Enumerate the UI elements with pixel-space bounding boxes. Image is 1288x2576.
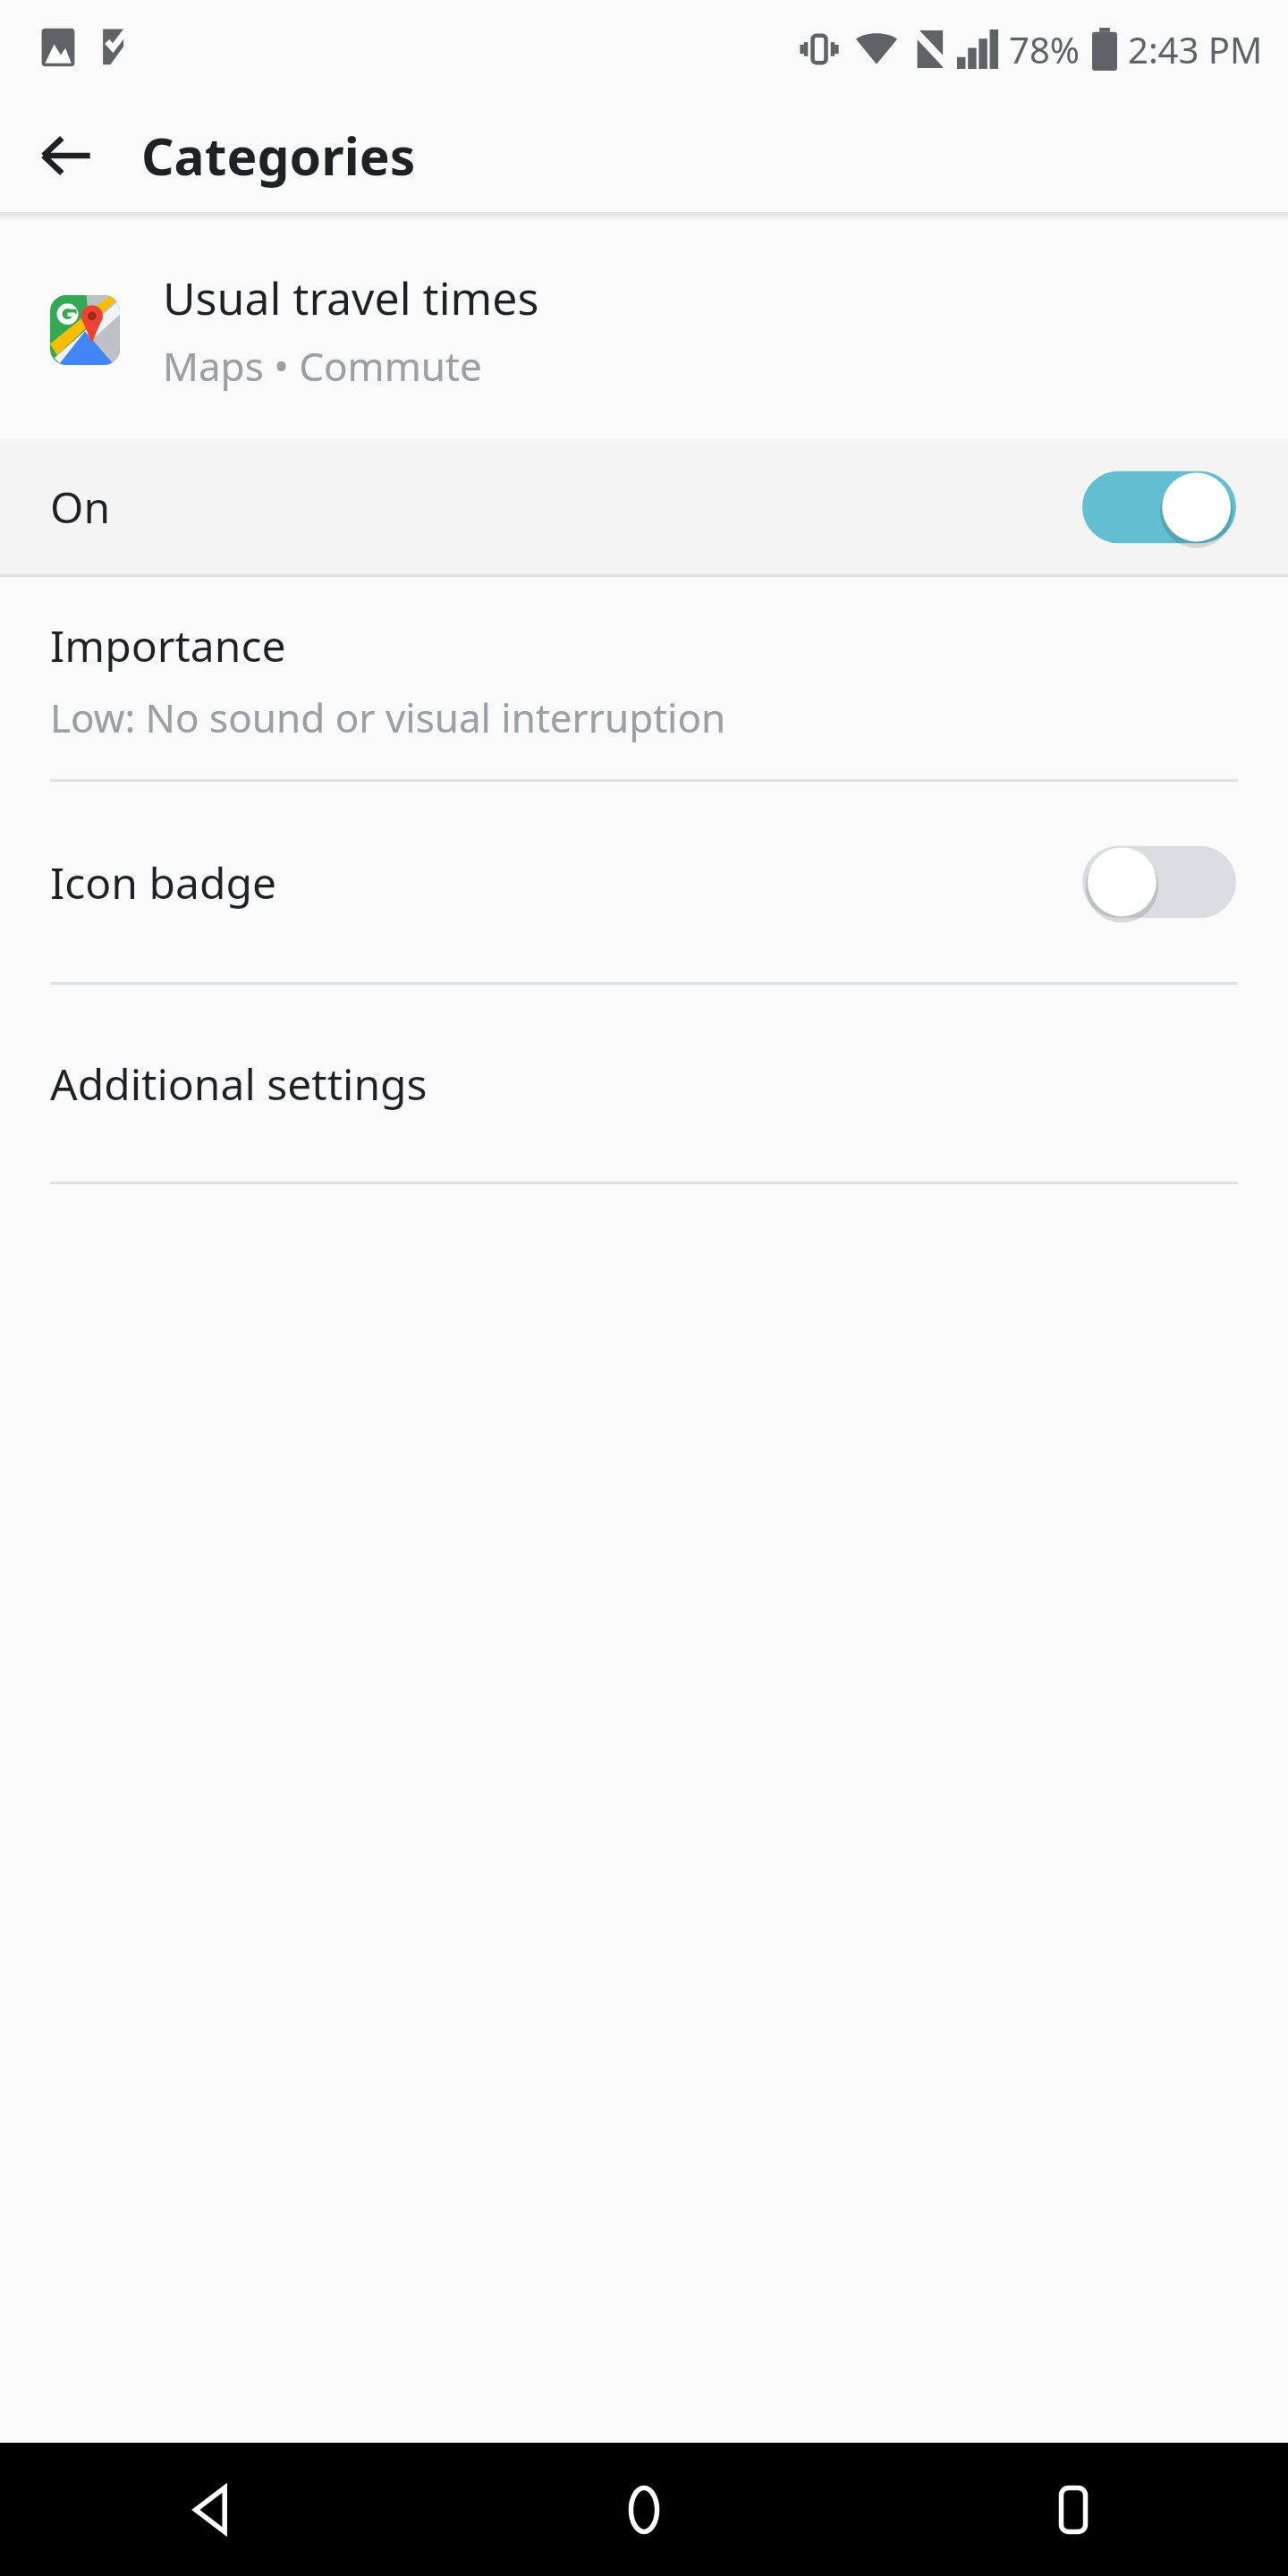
button[interactable]: Recents bbox=[859, 2443, 1288, 2576]
button[interactable]: Back bbox=[20, 109, 113, 202]
button[interactable]: Additional settings bbox=[0, 985, 1288, 1182]
button[interactable]: Back bbox=[0, 2443, 429, 2576]
staticText: Importance bbox=[50, 616, 286, 674]
button[interactable]: Icon badge bbox=[0, 782, 1288, 982]
button[interactable]: Home bbox=[429, 2443, 859, 2576]
button[interactable]: On bbox=[0, 439, 1288, 574]
staticText: Additional settings bbox=[50, 1055, 428, 1113]
button[interactable]: Importance bbox=[0, 577, 1288, 779]
staticText: On bbox=[50, 478, 111, 536]
staticText: Icon badge bbox=[50, 853, 277, 911]
staticText: 2:43 PM bbox=[1128, 25, 1263, 73]
staticText: Usual travel times bbox=[163, 267, 539, 328]
staticText: Low: No sound or visual interruption bbox=[50, 691, 726, 744]
button[interactable]: Usual travel times bbox=[0, 221, 1288, 439]
staticText: Categories bbox=[141, 121, 416, 191]
staticText: Maps • Commute bbox=[163, 339, 482, 393]
staticText: 78% bbox=[1009, 25, 1080, 73]
